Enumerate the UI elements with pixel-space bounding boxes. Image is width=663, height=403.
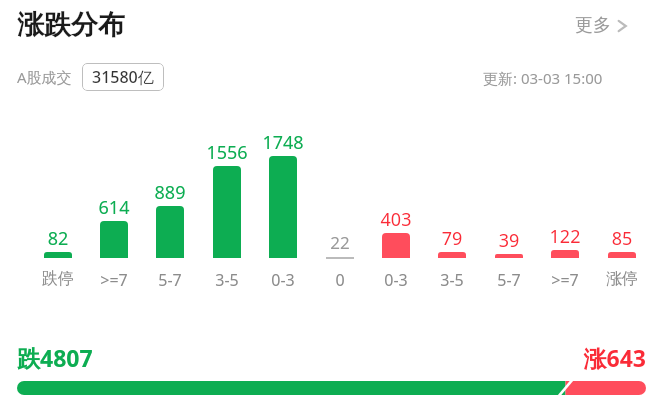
- staticText: 跌停: [23, 269, 93, 289]
- staticText: 1748: [248, 130, 318, 155]
- button[interactable]: 更多: [575, 14, 628, 37]
- staticText: 0: [305, 269, 375, 291]
- staticText: 5-7: [474, 269, 544, 291]
- staticText: 涨643: [496, 342, 646, 373]
- staticText: 79: [417, 226, 487, 251]
- button[interactable]: [269, 156, 297, 258]
- button[interactable]: [213, 166, 241, 258]
- button[interactable]: [156, 206, 184, 258]
- staticText: 31580亿: [92, 66, 154, 88]
- button[interactable]: 31580亿: [92, 66, 154, 88]
- staticText: 跌4807: [17, 342, 93, 373]
- staticText: 39: [474, 228, 544, 253]
- staticText: 403: [361, 207, 431, 232]
- staticText: 0-3: [248, 269, 318, 291]
- staticText: A股成交: [17, 67, 72, 87]
- staticText: 更新: 03-03 15:00: [483, 68, 603, 88]
- button[interactable]: 涨跌分布: [17, 8, 125, 42]
- staticText: 更多: [575, 14, 611, 37]
- staticText: 85: [587, 226, 657, 251]
- staticText: 0-3: [361, 269, 431, 291]
- button[interactable]: [551, 250, 579, 258]
- staticText: 889: [135, 180, 205, 205]
- button[interactable]: [438, 252, 466, 258]
- staticText: 3-5: [192, 269, 262, 291]
- staticText: >=7: [79, 269, 149, 291]
- staticText: 3-5: [417, 269, 487, 291]
- staticText: 82: [23, 226, 93, 251]
- button[interactable]: [495, 254, 523, 258]
- staticText: 涨跌分布: [17, 8, 125, 42]
- staticText: 122: [530, 224, 600, 249]
- staticText: 22: [318, 231, 362, 254]
- staticText: 涨停: [587, 269, 657, 289]
- button[interactable]: [17, 381, 646, 395]
- button[interactable]: [382, 233, 410, 258]
- staticText: 1556: [192, 140, 262, 165]
- staticText: 5-7: [135, 269, 205, 291]
- button[interactable]: [100, 221, 128, 258]
- staticText: >=7: [530, 269, 600, 291]
- staticText: 614: [79, 195, 149, 220]
- button[interactable]: [608, 252, 636, 258]
- button[interactable]: [44, 252, 72, 258]
